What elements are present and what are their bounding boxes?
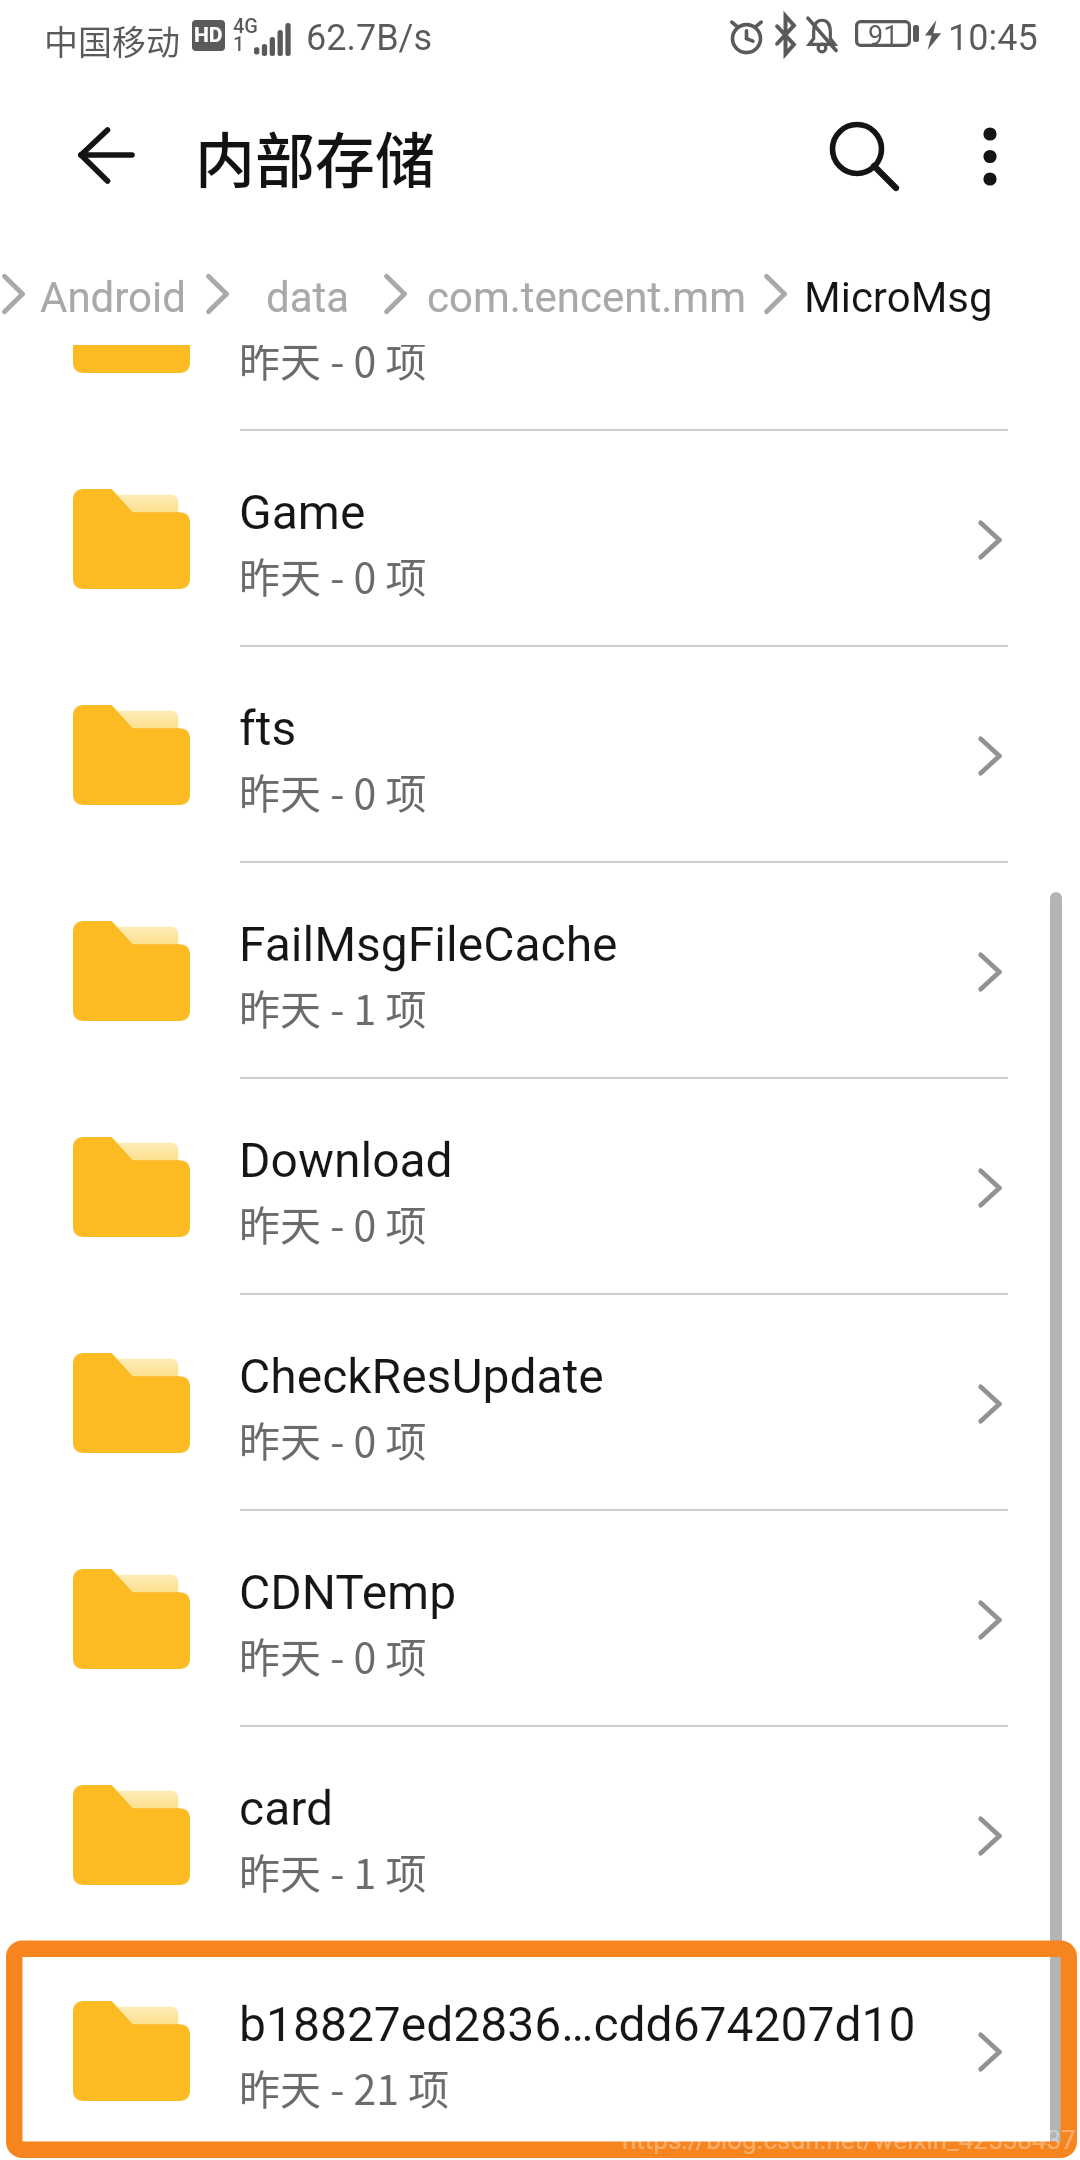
staticText: 昨天 - 0 项: [239, 761, 427, 820]
staticText: com.tencent.mm: [427, 273, 746, 322]
staticText: 昨天 - 0 项: [239, 1193, 427, 1252]
staticText: 62.7B/s: [306, 17, 433, 59]
staticText: 昨天 - 0 项: [239, 329, 427, 388]
staticText: 内部存储: [195, 113, 435, 200]
staticText: 昨天 - 0 项: [239, 1625, 427, 1684]
button[interactable]: 昨天 - 0 项: [0, 215, 1080, 431]
staticText: data: [266, 273, 350, 322]
staticText: 10:45: [948, 17, 1038, 59]
button[interactable]: FailMsgFileCache: [0, 863, 1080, 1079]
staticText: card: [239, 1780, 334, 1836]
button[interactable]: com.tencent.mm: [427, 261, 746, 333]
staticText: 昨天 - 21 项: [239, 2057, 450, 2116]
staticText: FailMsgFileCache: [239, 916, 618, 972]
button[interactable]: Search: [802, 92, 914, 217]
staticText: MicroMsg: [804, 273, 993, 322]
staticText: Android: [40, 273, 186, 322]
button[interactable]: More options: [935, 92, 1045, 217]
button[interactable]: card: [0, 1727, 1080, 1943]
staticText: 91: [868, 20, 899, 47]
button[interactable]: CDNTemp: [0, 1511, 1080, 1727]
staticText: HD: [194, 23, 223, 48]
button[interactable]: b18827ed2836…cdd674207d10: [0, 1943, 1080, 2159]
button[interactable]: Download: [0, 1079, 1080, 1295]
button[interactable]: CheckResUpdate: [0, 1295, 1080, 1511]
staticText: 昨天 - 0 项: [239, 545, 427, 604]
staticText: CheckResUpdate: [239, 1348, 604, 1404]
staticText: https://blog.csdn.net/weixin_42558437: [622, 2125, 1076, 2155]
staticText: 昨天 - 1 项: [239, 977, 427, 1036]
staticText: 4G: [233, 14, 258, 37]
staticText: 1: [233, 32, 245, 55]
staticText: Game: [239, 484, 366, 540]
staticText: b18827ed2836…cdd674207d10: [239, 1996, 916, 2052]
staticText: 中国移动: [44, 16, 180, 65]
staticText: CDNTemp: [239, 1564, 457, 1620]
button[interactable]: MicroMsg: [804, 261, 993, 333]
staticText: fts: [239, 700, 297, 756]
staticText: 昨天 - 1 项: [239, 1841, 427, 1900]
button[interactable]: Android: [40, 261, 186, 333]
button[interactable]: Game: [0, 431, 1080, 647]
button[interactable]: data: [266, 261, 350, 333]
staticText: Download: [239, 1132, 453, 1188]
staticText: 昨天 - 0 项: [239, 1409, 427, 1468]
button[interactable]: Back: [26, 100, 136, 210]
button[interactable]: fts: [0, 647, 1080, 863]
